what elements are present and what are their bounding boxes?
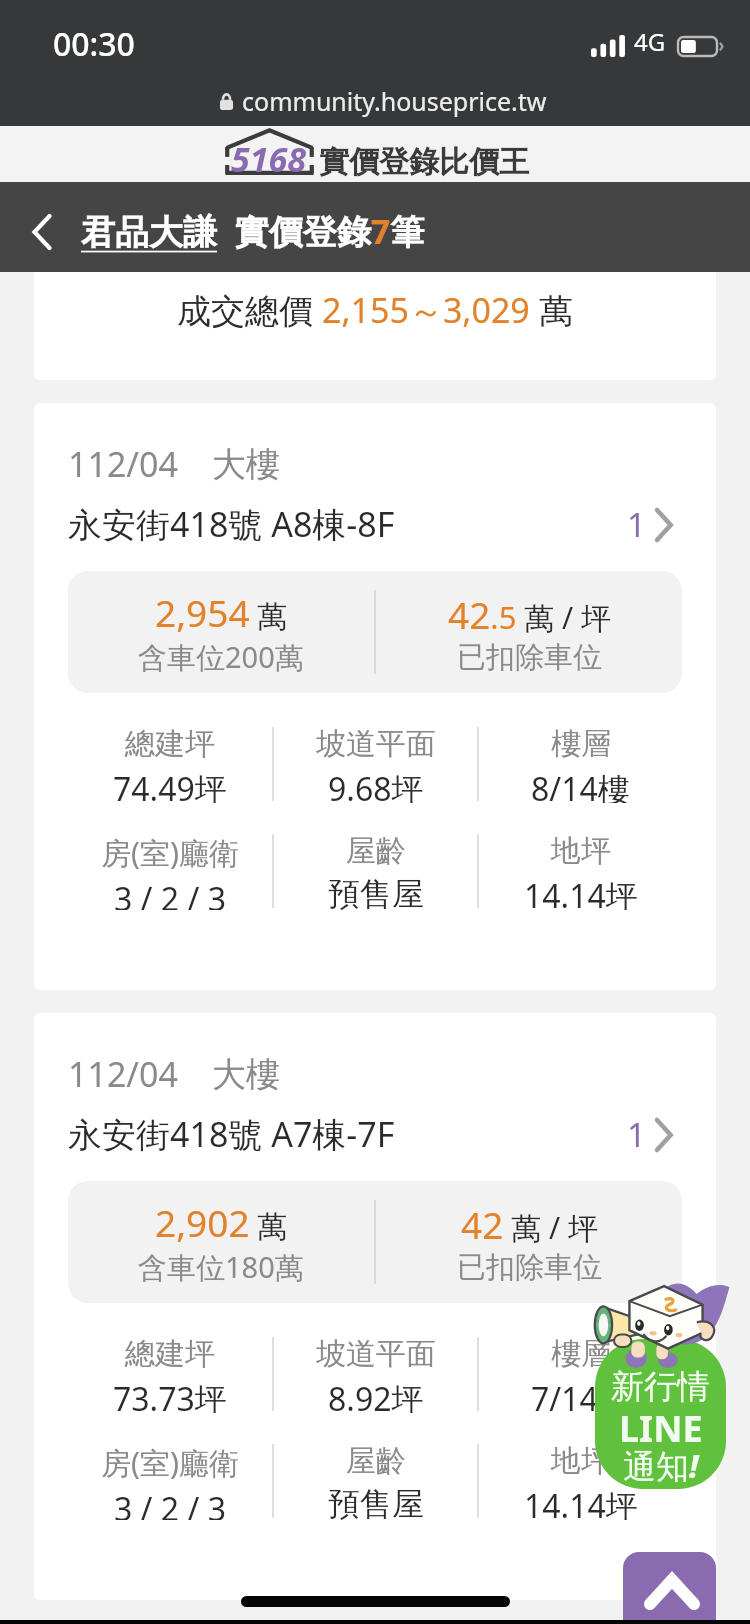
staticText: 樓層: [551, 725, 611, 763]
staticText: 8/14樓: [531, 767, 630, 803]
staticText: 00:30: [53, 22, 135, 66]
staticText: 42 萬 / 坪: [461, 1199, 598, 1249]
staticText: 大樓: [212, 443, 280, 486]
staticText: 9.68坪: [328, 767, 424, 803]
staticText: 4G: [634, 25, 666, 58]
button[interactable]: LINE notify: [595, 1339, 726, 1489]
staticText: 大樓: [212, 1053, 280, 1096]
staticText: 樓層: [551, 1335, 611, 1373]
staticText: 14.14坪: [524, 1484, 638, 1520]
staticText: 3 / 2 / 3: [114, 877, 227, 910]
staticText: 3 / 2 / 3: [114, 1487, 227, 1520]
staticText: 坡道平面: [316, 725, 436, 763]
staticText: 預售屋: [328, 874, 424, 910]
staticText: 屋齡: [346, 1442, 406, 1480]
staticText: 新行情: [611, 1366, 710, 1408]
staticText: 2,902 萬: [155, 1197, 288, 1247]
staticText: 74.49坪: [113, 767, 227, 803]
staticText: 已扣除車位: [457, 639, 602, 676]
staticText: 地坪: [551, 832, 611, 870]
staticText: 含車位180萬: [138, 1247, 304, 1287]
button[interactable]: 112/04: [34, 1013, 716, 1600]
staticText: 坡道平面: [316, 1335, 436, 1373]
staticText: 實價登錄比價王: [319, 143, 529, 181]
staticText: 1: [627, 1112, 646, 1157]
staticText: 成交總價: [177, 287, 322, 333]
staticText: 含車位200萬: [138, 637, 304, 677]
staticText: 2,155～3,029: [322, 287, 530, 333]
staticText: 萬: [530, 287, 573, 333]
staticText: 總建坪: [125, 725, 215, 763]
staticText: LINE: [619, 1404, 703, 1453]
staticText: 房(室)廳衛: [101, 832, 239, 873]
staticText: community.houseprice.tw: [242, 84, 547, 118]
staticText: 5168: [231, 136, 306, 182]
button[interactable]: Back: [14, 201, 70, 263]
staticText: 73.73坪: [113, 1377, 227, 1413]
staticText: 14.14坪: [524, 874, 638, 910]
staticText: 112/04: [68, 1051, 178, 1097]
button[interactable]: 成交總價: [34, 272, 716, 380]
staticText: 8.92坪: [328, 1377, 424, 1413]
staticText: 1: [627, 502, 646, 547]
staticText: 屋齡: [346, 832, 406, 870]
staticText: 永安街418號 A8棟-8F: [68, 501, 632, 547]
staticText: 永安街418號 A7棟-7F: [68, 1111, 632, 1157]
staticText: 房(室)廳衛: [101, 1442, 239, 1483]
staticText: 2,954 萬: [155, 587, 288, 637]
staticText: 7/14樓: [531, 1377, 630, 1413]
staticText: 112/04: [68, 441, 178, 487]
staticText: 君品大謙 實價登錄7筆: [81, 208, 425, 254]
staticText: 預售屋: [328, 1484, 424, 1520]
staticText: 已扣除車位: [457, 1249, 602, 1286]
staticText: 42.5 萬 / 坪: [448, 589, 611, 639]
staticText: 通知!: [623, 1443, 699, 1488]
button[interactable]: Scroll to top: [623, 1552, 716, 1624]
staticText: 地坪: [551, 1442, 611, 1480]
staticText: 總建坪: [125, 1335, 215, 1373]
button[interactable]: 112/04: [34, 403, 716, 990]
